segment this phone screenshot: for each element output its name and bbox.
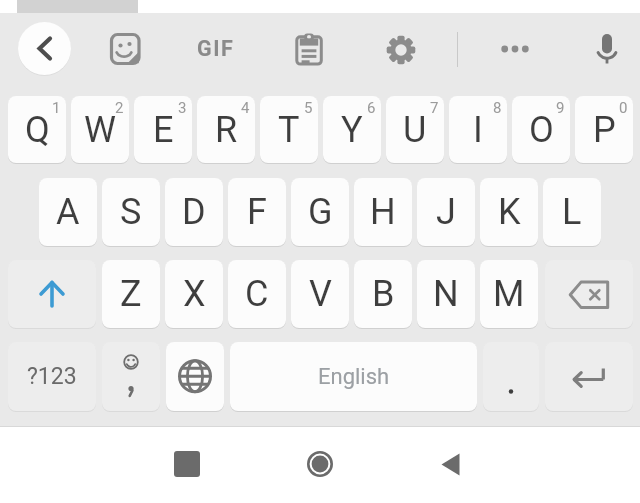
button[interactable] — [375, 24, 427, 76]
staticText: U — [403, 109, 427, 151]
staticText: 1 — [52, 99, 61, 117]
staticText: E — [153, 109, 174, 151]
button[interactable]: F — [228, 178, 286, 246]
button[interactable]: N — [417, 260, 475, 328]
button[interactable] — [494, 39, 536, 59]
button[interactable]: D — [165, 178, 223, 246]
staticText: 4 — [241, 99, 250, 117]
button[interactable]: W — [71, 96, 129, 163]
button[interactable] — [545, 342, 633, 411]
button[interactable]: G — [291, 178, 349, 246]
staticText: 3 — [178, 99, 187, 117]
staticText: D — [182, 191, 206, 233]
button[interactable] — [99, 23, 151, 75]
staticText: M — [493, 273, 525, 315]
staticText: T — [278, 109, 300, 151]
button[interactable]: Q — [8, 96, 66, 163]
staticText: 8 — [493, 99, 502, 117]
staticText: R — [215, 109, 238, 151]
button[interactable] — [545, 260, 633, 328]
staticText: A — [56, 191, 80, 233]
staticText: V — [309, 273, 332, 315]
staticText: L — [562, 191, 582, 233]
staticText: I — [473, 109, 483, 151]
staticText: 2 — [115, 99, 124, 117]
button[interactable] — [8, 260, 96, 328]
staticText: W — [84, 109, 116, 151]
button[interactable]: B — [354, 260, 412, 328]
button[interactable] — [18, 22, 71, 75]
staticText: 7 — [430, 99, 439, 117]
staticText: 9 — [556, 99, 565, 117]
button[interactable] — [439, 452, 461, 477]
staticText: H — [370, 191, 396, 233]
staticText: B — [372, 273, 395, 315]
staticText: S — [120, 191, 142, 233]
button[interactable]: T — [260, 96, 318, 163]
staticText: X — [183, 273, 206, 315]
staticText: Y — [341, 109, 363, 151]
staticText: ?123 — [27, 363, 77, 390]
button[interactable]: E — [134, 96, 192, 163]
button[interactable]: J — [417, 178, 475, 246]
staticText: O — [529, 109, 554, 151]
button[interactable]: I — [449, 96, 507, 163]
button[interactable]: GIF — [190, 33, 242, 64]
button[interactable]: U — [386, 96, 444, 163]
button[interactable] — [283, 24, 335, 76]
staticText: G — [308, 191, 333, 233]
button[interactable] — [102, 342, 160, 411]
button[interactable]: M — [480, 260, 538, 328]
button[interactable]: X — [165, 260, 223, 328]
button[interactable]: English — [230, 342, 477, 411]
staticText: 6 — [367, 99, 376, 117]
staticText: English — [318, 364, 390, 390]
button[interactable]: R — [197, 96, 255, 163]
button[interactable] — [174, 451, 200, 477]
button[interactable]: O — [512, 96, 570, 163]
button[interactable] — [166, 342, 224, 411]
button[interactable]: H — [354, 178, 412, 246]
button[interactable]: A — [39, 178, 97, 246]
staticText: F — [247, 191, 267, 233]
staticText: Q — [25, 109, 50, 151]
button[interactable]: V — [291, 260, 349, 328]
staticText: Z — [120, 273, 142, 315]
button[interactable] — [581, 22, 633, 74]
staticText: GIF — [197, 36, 235, 61]
staticText: 0 — [619, 99, 628, 117]
staticText: P — [593, 109, 616, 151]
button[interactable] — [306, 450, 334, 478]
staticText: J — [436, 191, 456, 233]
staticText: K — [498, 191, 521, 233]
button[interactable]: Y — [323, 96, 381, 163]
staticText: C — [245, 273, 269, 315]
staticText: 5 — [304, 99, 313, 117]
button[interactable]: L — [543, 178, 601, 246]
button[interactable]: ?123 — [8, 342, 96, 411]
button[interactable] — [483, 342, 539, 411]
button[interactable]: S — [102, 178, 160, 246]
button[interactable]: C — [228, 260, 286, 328]
button[interactable]: P — [575, 96, 633, 163]
staticText: N — [433, 273, 459, 315]
button[interactable]: K — [480, 178, 538, 246]
button[interactable]: Z — [102, 260, 160, 328]
